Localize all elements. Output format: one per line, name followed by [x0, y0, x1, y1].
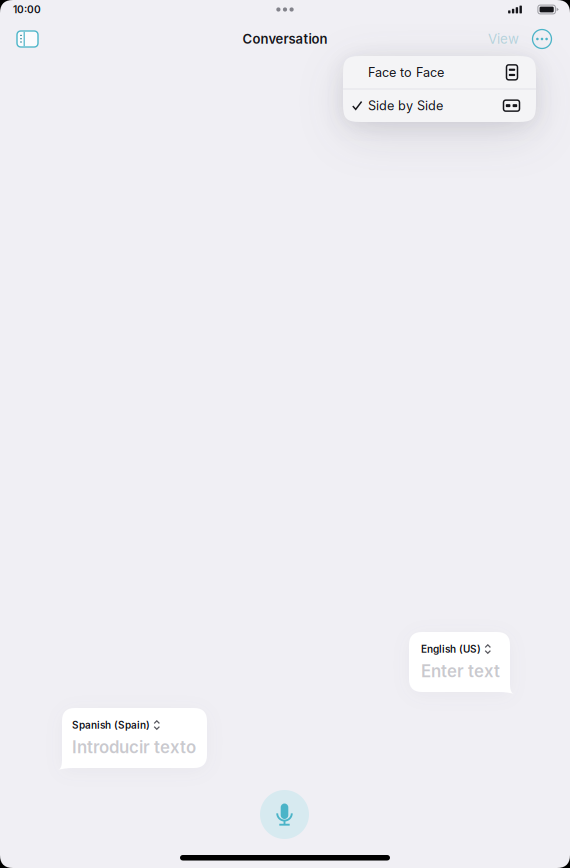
button[interactable]: Toggle Sidebar [10, 25, 45, 53]
button[interactable]: Face to Face [343, 56, 536, 89]
button[interactable]: Record [260, 790, 309, 839]
staticText: View [488, 31, 519, 47]
staticText: Face to Face [368, 65, 444, 80]
button[interactable]: View [482, 25, 525, 53]
staticText: Conversation [242, 31, 327, 47]
staticText: Introducir texto [72, 737, 196, 757]
button[interactable]: View options [525, 23, 559, 55]
staticText: 10:00 [13, 3, 41, 16]
staticText: Enter text [421, 661, 500, 681]
staticText: Spanish (Spain) [72, 719, 150, 731]
staticText: English (US) [421, 643, 481, 655]
button[interactable]: Side by Side [343, 89, 536, 122]
staticText: Side by Side [368, 98, 443, 113]
